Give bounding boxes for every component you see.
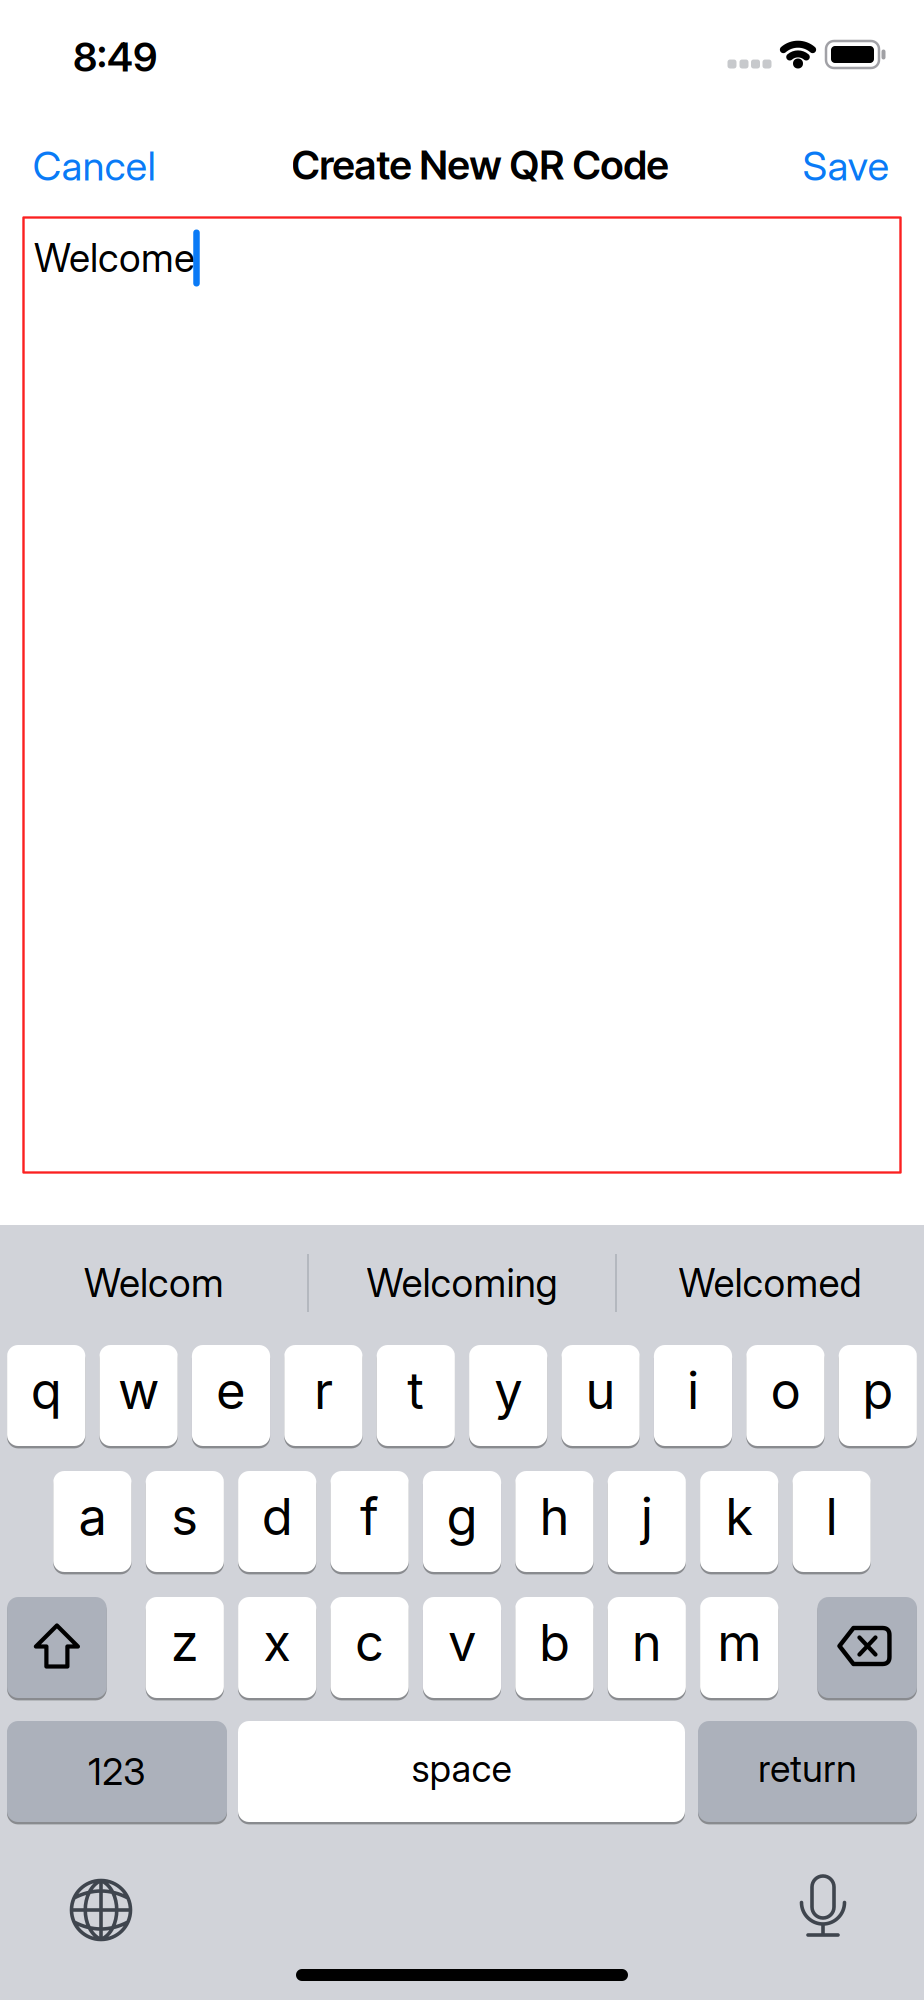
button[interactable]: 123 [7,1719,227,1823]
staticText: Create New QR Code [291,141,668,189]
staticText: 8:49 [73,33,157,81]
staticText: s [171,1487,198,1546]
button[interactable]: z [146,1595,224,1699]
staticText: space [411,1746,511,1790]
staticText: b [539,1613,570,1672]
button[interactable]: h [515,1469,593,1573]
button[interactable]: y [469,1343,547,1447]
staticText: o [770,1361,800,1420]
button[interactable]: Welcomed [620,1238,920,1328]
button[interactable]: o [746,1343,824,1447]
button[interactable]: u [561,1343,640,1447]
button[interactable]: Cancel [32,142,155,190]
staticText: e [216,1361,246,1420]
staticText: g [446,1487,477,1546]
button[interactable]: Shift [7,1595,107,1699]
button[interactable]: v [423,1595,501,1699]
button[interactable]: Dictate [773,1856,873,1956]
button[interactable]: k [700,1469,778,1573]
button[interactable]: Welcoming [312,1238,612,1328]
staticText: v [448,1613,476,1672]
staticText: c [355,1613,384,1672]
staticText: a [78,1487,106,1546]
staticText: Welcom [84,1260,224,1306]
button[interactable]: i [654,1343,732,1447]
button[interactable]: d [238,1469,316,1573]
button[interactable]: space [238,1719,685,1823]
button[interactable]: a [53,1469,131,1573]
staticText: m [717,1613,761,1672]
staticText: t [407,1361,424,1420]
staticText: d [262,1487,293,1546]
button[interactable]: c [330,1595,409,1699]
button[interactable]: x [238,1595,316,1699]
staticText: Welcome [34,235,195,281]
staticText: w [118,1361,159,1420]
staticText: q [31,1361,62,1420]
button[interactable]: n [608,1595,686,1699]
staticText: x [263,1613,291,1672]
staticText: u [586,1361,616,1420]
button[interactable]: p [839,1343,917,1447]
staticText: k [725,1487,753,1546]
button[interactable]: j [608,1469,686,1573]
button[interactable]: Save [802,142,889,190]
button[interactable]: w [99,1343,178,1447]
staticText: i [687,1361,699,1420]
button[interactable]: q [7,1343,85,1447]
staticText: j [641,1487,653,1546]
button[interactable]: Welcom [4,1238,304,1328]
button[interactable]: return [698,1719,917,1823]
button[interactable]: Delete [817,1595,917,1699]
button[interactable]: m [700,1595,778,1699]
button[interactable]: r [284,1343,362,1447]
button[interactable]: s [146,1469,224,1573]
staticText: z [171,1613,199,1672]
staticText: r [314,1361,333,1420]
staticText: Welcoming [366,1260,557,1306]
button[interactable]: g [423,1469,501,1573]
staticText: return [758,1746,857,1790]
staticText: p [862,1361,893,1420]
staticText: y [494,1361,522,1420]
button[interactable]: f [330,1469,409,1573]
button[interactable]: t [377,1343,455,1447]
button[interactable]: Next keyboard [51,1860,151,1960]
staticText: Save [802,142,889,190]
button[interactable]: l [792,1469,871,1573]
staticText: h [539,1487,569,1546]
staticText: Cancel [32,142,155,190]
button[interactable]: b [515,1595,593,1699]
staticText: f [360,1487,379,1546]
staticText: 123 [88,1749,146,1793]
staticText: Welcomed [678,1260,861,1306]
staticText: l [826,1487,838,1546]
staticText: n [632,1613,662,1672]
button[interactable]: e [192,1343,270,1447]
